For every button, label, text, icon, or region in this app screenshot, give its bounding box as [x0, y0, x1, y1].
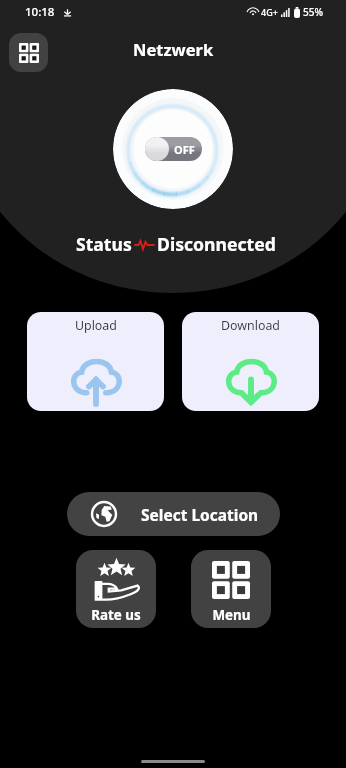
staticText: Upload	[75, 317, 117, 334]
staticText: Download	[221, 317, 280, 334]
button[interactable]: Upload	[27, 312, 164, 411]
staticText: Select Location	[141, 504, 259, 525]
staticText: 55%	[303, 5, 323, 19]
button[interactable]: Rate us	[76, 550, 156, 628]
button[interactable]: Download	[182, 312, 319, 411]
button[interactable]: Apps	[9, 33, 48, 72]
button[interactable]: Select Location	[67, 492, 280, 536]
staticText: Netzwerk	[133, 38, 214, 60]
staticText: 4G+	[261, 6, 278, 18]
staticText: Rate us	[91, 606, 141, 624]
button[interactable]: Menu	[191, 550, 271, 628]
staticText: OFF	[174, 142, 195, 157]
staticText: 10:18	[25, 4, 55, 20]
staticText: Status	[76, 232, 132, 256]
staticText: Disconnected	[157, 232, 276, 256]
staticText: Menu	[212, 606, 251, 624]
button[interactable]: Power toggle	[113, 89, 233, 209]
